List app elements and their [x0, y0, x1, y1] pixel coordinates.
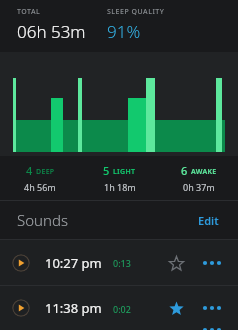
- button[interactable]: Play recording: [0, 240, 238, 285]
- staticText: 4h 56m: [24, 181, 56, 193]
- button[interactable]: Play recording: [12, 254, 30, 272]
- staticText: LIGHT: [113, 167, 136, 177]
- staticText: 11:38 pm: [45, 299, 102, 317]
- button[interactable]: More options: [199, 297, 225, 319]
- staticText: TOTAL: [17, 7, 41, 17]
- staticText: DEEP: [36, 167, 55, 177]
- staticText: 0h 37m: [183, 181, 215, 193]
- staticText: SLEEP QUALITY: [107, 7, 165, 17]
- staticText: 4: [26, 163, 33, 178]
- button[interactable]: Edit: [196, 209, 221, 232]
- button[interactable]: More options: [199, 252, 225, 274]
- staticText: 0:13: [113, 257, 131, 269]
- staticText: Edit: [198, 213, 219, 228]
- staticText: 0:02: [113, 303, 131, 315]
- staticText: Sounds: [17, 210, 68, 230]
- staticText: 06h 53m: [17, 20, 86, 43]
- staticText: 6: [181, 163, 188, 178]
- staticText: 91%: [107, 20, 141, 43]
- button[interactable]: Play recording: [12, 299, 30, 317]
- staticText: 5: [103, 163, 110, 178]
- staticText: 1h 18m: [104, 181, 136, 193]
- button[interactable]: Play recording: [0, 286, 238, 330]
- button[interactable]: Unstar: [165, 297, 187, 319]
- staticText: AWAKE: [191, 167, 217, 177]
- staticText: 10:27 pm: [45, 254, 102, 272]
- button[interactable]: Star: [165, 252, 187, 274]
